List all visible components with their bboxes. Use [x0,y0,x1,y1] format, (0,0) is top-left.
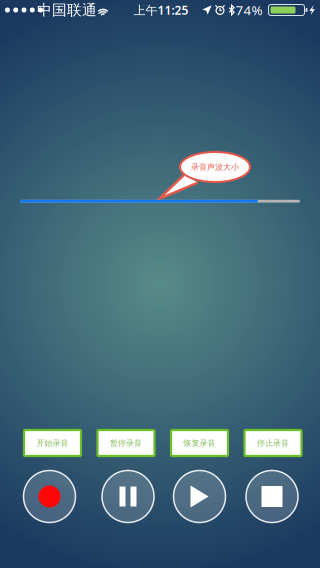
staticText: 暂停录音 [110,438,142,448]
button[interactable]: Stop [246,470,298,522]
button[interactable]: Record [23,470,75,522]
staticText: 中国联通 [37,1,97,19]
staticText: 恢复录音 [183,438,215,448]
button[interactable]: 停止录音 [244,430,301,456]
button[interactable]: 开始录音 [24,430,81,456]
button[interactable]: 暂停录音 [97,430,154,456]
staticText: 74% [235,1,262,19]
staticText: 录音声波大小 [191,162,239,172]
staticText: 停止录音 [257,438,289,448]
button[interactable]: Play [173,470,225,522]
button[interactable]: 恢复录音 [171,430,228,456]
button[interactable]: Pause [102,470,154,522]
staticText: 开始录音 [36,438,68,448]
staticText: 上午11:25 [133,2,188,18]
